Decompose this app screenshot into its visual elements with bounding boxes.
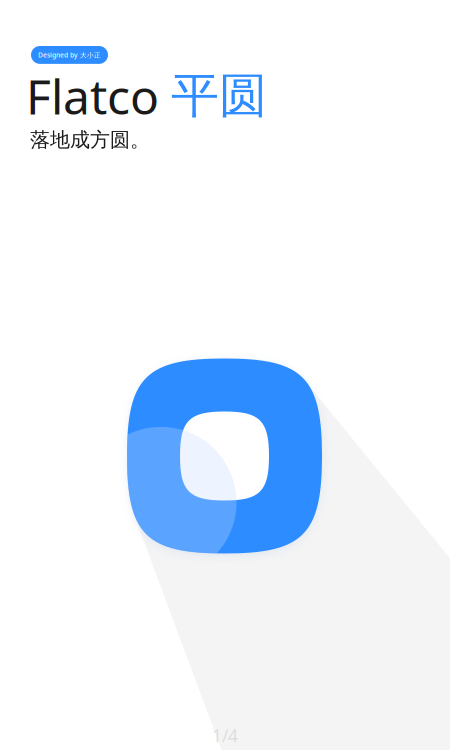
staticText: 落地成方圆。 [30,128,150,152]
staticText: 1/4 [212,724,238,747]
staticText: 平圆 [171,66,267,125]
staticText: Designed by 大小正 [38,50,101,59]
staticText: Flatco [26,64,171,128]
